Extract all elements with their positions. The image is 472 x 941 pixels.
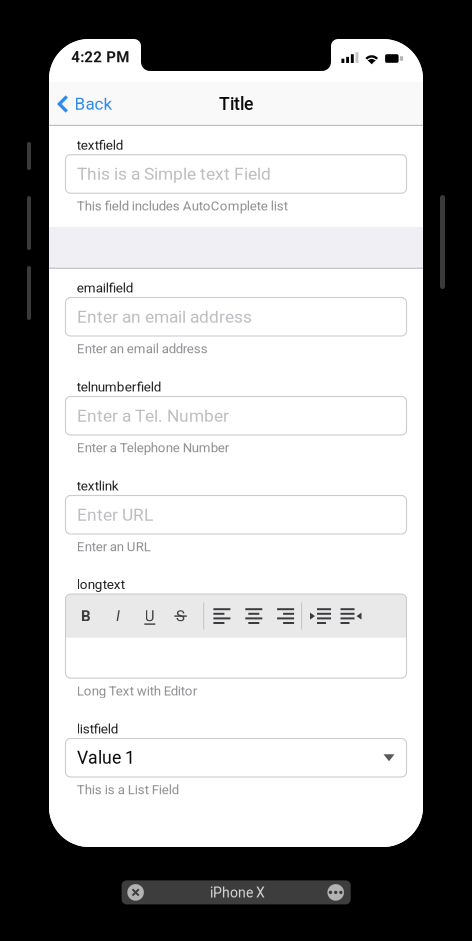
staticText: U bbox=[145, 607, 155, 625]
button[interactable]: Enter an email address bbox=[65, 297, 406, 336]
button[interactable]: Decrease indent bbox=[336, 594, 366, 638]
staticText: longtext bbox=[77, 577, 125, 592]
button[interactable]: Bold bbox=[71, 594, 101, 638]
staticText: Long Text with Editor bbox=[77, 683, 197, 699]
staticText: This field includes AutoComplete list bbox=[77, 198, 288, 214]
button[interactable]: This is a Simple text Field bbox=[65, 155, 406, 193]
staticText: Back bbox=[74, 94, 112, 114]
staticText: textfield bbox=[77, 137, 124, 153]
button[interactable]: Strikethrough bbox=[166, 594, 196, 638]
staticText: telnumberfield bbox=[77, 379, 162, 395]
button[interactable]: Value 1 bbox=[65, 738, 406, 777]
staticText: listfield bbox=[77, 721, 119, 737]
staticText: 4:22 PM bbox=[71, 48, 129, 66]
staticText: B bbox=[81, 607, 91, 625]
button[interactable]: Enter URL bbox=[65, 495, 406, 534]
staticText: Enter URL bbox=[77, 505, 153, 525]
button[interactable]: Increase indent bbox=[305, 594, 335, 638]
staticText: iPhone X bbox=[210, 884, 265, 901]
staticText: Enter an URL bbox=[77, 539, 151, 554]
button[interactable]: Align centre bbox=[239, 594, 269, 638]
staticText: This is a Simple text Field bbox=[77, 164, 271, 184]
staticText: Enter an email address bbox=[77, 307, 252, 327]
button[interactable]: Underline bbox=[135, 594, 165, 638]
button[interactable]: Align left bbox=[207, 594, 237, 638]
button[interactable]: Enter a Tel. Number bbox=[65, 396, 406, 435]
button[interactable]: Italic bbox=[103, 594, 133, 638]
staticText: Title bbox=[219, 94, 253, 114]
button[interactable]: Back bbox=[49, 82, 122, 126]
staticText: Enter a Telephone Number bbox=[77, 440, 229, 455]
button[interactable]: Close preview bbox=[124, 880, 148, 904]
staticText: textlink bbox=[77, 478, 119, 494]
staticText: Enter a Tel. Number bbox=[77, 406, 229, 426]
staticText: This is a List Field bbox=[77, 782, 179, 797]
button[interactable]: More options bbox=[324, 880, 348, 904]
button[interactable]: Align right bbox=[271, 594, 301, 638]
staticText: I bbox=[116, 607, 120, 625]
staticText: emailfield bbox=[77, 280, 134, 296]
staticText: Value 1 bbox=[77, 747, 135, 768]
staticText: S bbox=[176, 607, 185, 625]
staticText: Enter an email address bbox=[77, 341, 208, 356]
